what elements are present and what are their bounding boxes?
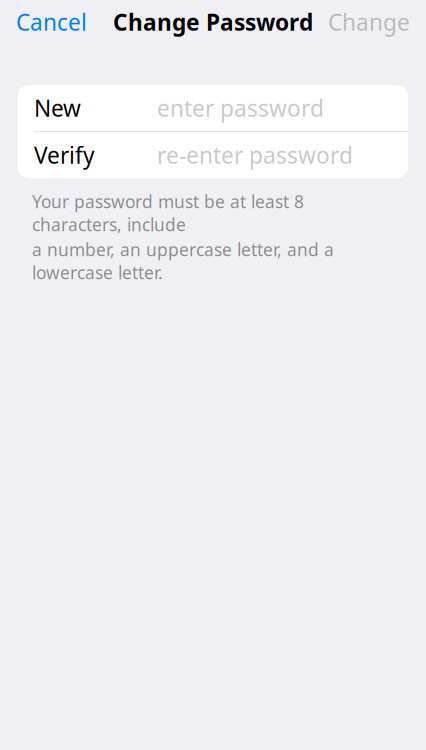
button[interactable]: New [18,85,408,131]
staticText: Change [328,7,410,37]
staticText: re-enter password [157,140,353,170]
button[interactable]: Cancel [0,0,103,47]
staticText: Your password must be at least 8 charact… [32,190,304,236]
staticText: New [34,93,81,123]
button[interactable]: Verify [18,132,408,178]
staticText: a number, an uppercase letter, and a low… [32,238,334,284]
staticText: Change Password [113,7,313,37]
staticText: Verify [34,140,95,170]
button[interactable]: Change [312,0,426,47]
staticText: Cancel [16,7,87,37]
staticText: enter password [157,93,324,123]
